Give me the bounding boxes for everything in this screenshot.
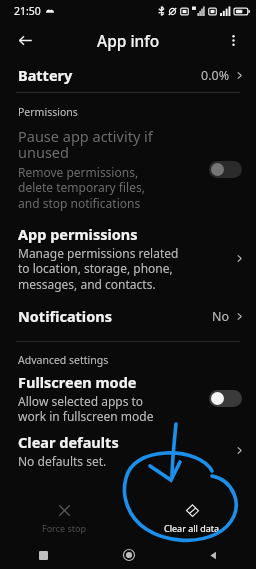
button[interactable]: Back [10, 25, 40, 55]
button[interactable]: Toggle [209, 390, 242, 407]
button[interactable]: Notifications [0, 303, 256, 329]
staticText: Allow selected apps to work in fullscree… [18, 393, 154, 425]
button[interactable]: Home [86, 541, 171, 569]
staticText: Pause app activity if unused [18, 126, 153, 163]
staticText: App permissions [18, 224, 138, 244]
staticText: No [212, 308, 230, 325]
staticText: Fullscreen mode [18, 372, 137, 392]
staticText: Notifications [18, 306, 112, 326]
staticText: Manage permissions related to location, … [18, 245, 179, 293]
staticText: No defaults set. [18, 453, 107, 469]
staticText: Clear defaults [18, 432, 119, 452]
button[interactable]: Toggle [209, 161, 242, 178]
button[interactable]: App permissions [0, 224, 256, 293]
staticText: Advanced settings [18, 353, 109, 367]
button[interactable]: Pause app activity if unused [0, 126, 256, 212]
button[interactable]: Back [171, 541, 256, 569]
button[interactable]: Fullscreen mode [0, 372, 256, 425]
staticText: Force stop [42, 522, 86, 534]
staticText: 21:50 [14, 4, 41, 18]
staticText: Permissions [18, 105, 78, 119]
button[interactable]: More options [218, 25, 248, 55]
staticText: Remove permissions, delete temporary fil… [18, 164, 145, 212]
button[interactable]: Clear all data [128, 495, 256, 541]
button[interactable]: Battery [0, 58, 256, 92]
staticText: Battery [18, 65, 73, 85]
button[interactable]: Recents [0, 541, 86, 569]
staticText: 0.0% [201, 67, 230, 84]
button[interactable]: Clear defaults [0, 432, 256, 469]
button[interactable]: Force stop [0, 495, 128, 541]
staticText: App info [97, 30, 160, 51]
staticText: Clear all data [164, 522, 220, 534]
